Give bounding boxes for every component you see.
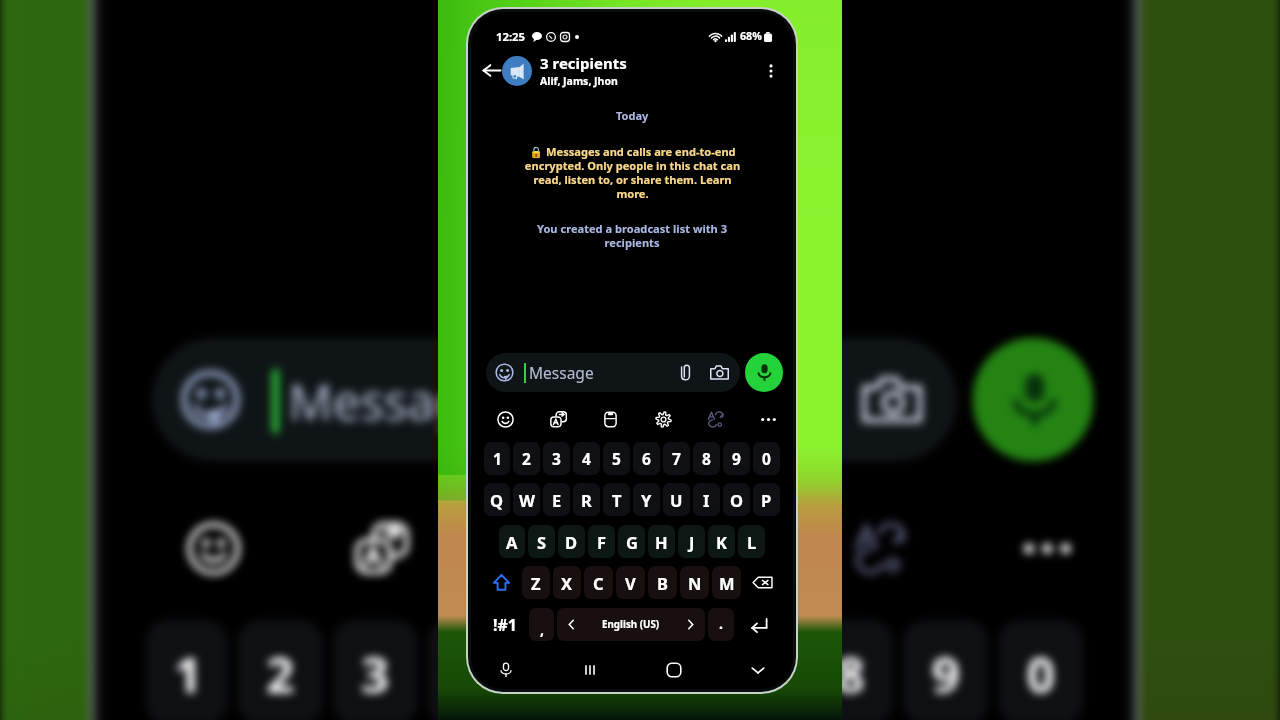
button[interactable]: Voice input xyxy=(491,655,521,685)
staticText: 7 xyxy=(741,639,770,706)
button[interactable]: Recent apps xyxy=(575,655,605,685)
button[interactable]: G xyxy=(618,525,645,558)
button[interactable]: Attach xyxy=(757,373,811,427)
button[interactable]: 9 xyxy=(723,442,750,475)
button[interactable]: Voice message xyxy=(745,353,783,392)
button[interactable]: S xyxy=(528,525,555,558)
button[interactable]: Back xyxy=(477,56,506,85)
button[interactable]: !#1 xyxy=(484,608,526,641)
staticText: 8 xyxy=(702,448,711,469)
button[interactable]: 0 xyxy=(753,442,780,475)
button[interactable]: More xyxy=(753,404,783,434)
staticText: P xyxy=(761,489,772,511)
button[interactable]: R xyxy=(573,483,600,516)
button[interactable]: Previous language xyxy=(557,608,705,641)
button[interactable]: Shift xyxy=(484,566,519,599)
button[interactable]: 3 xyxy=(332,620,418,720)
staticText: Z xyxy=(531,572,541,594)
staticText: B xyxy=(657,572,668,594)
button[interactable]: Y xyxy=(633,483,660,516)
button[interactable]: K xyxy=(708,525,735,558)
button[interactable]: Camera xyxy=(710,363,729,382)
button[interactable]: D xyxy=(558,525,585,558)
staticText: 1 xyxy=(174,639,202,706)
staticText: . xyxy=(719,614,723,633)
button[interactable]: Translate xyxy=(543,404,573,434)
staticText: 1 xyxy=(493,448,502,469)
button[interactable]: I xyxy=(693,483,720,516)
button[interactable]: More xyxy=(998,499,1093,595)
button[interactable]: 0 xyxy=(998,620,1084,720)
button[interactable]: 8 xyxy=(693,442,720,475)
staticText: Q xyxy=(490,489,504,511)
button[interactable]: Emoji and stickers xyxy=(486,353,740,392)
button[interactable]: More options xyxy=(758,58,784,84)
staticText: 4 xyxy=(456,639,485,706)
button[interactable]: 4 xyxy=(573,442,600,475)
button[interactable]: B xyxy=(648,566,677,599)
button[interactable]: X xyxy=(553,566,581,599)
button[interactable]: Z xyxy=(522,566,550,599)
button[interactable]: Backspace xyxy=(744,566,780,599)
button[interactable]: Q xyxy=(484,483,510,516)
button[interactable]: Camera xyxy=(862,369,922,430)
button[interactable]: , xyxy=(529,608,554,641)
button[interactable]: Attach xyxy=(677,364,694,381)
button[interactable]: Handwriting xyxy=(830,499,925,595)
button[interactable]: Emoji xyxy=(164,499,260,595)
button[interactable]: 9 xyxy=(903,620,989,720)
staticText: F xyxy=(597,531,607,553)
button[interactable]: E xyxy=(543,483,570,516)
button[interactable]: Hide keyboard xyxy=(743,655,773,685)
button[interactable]: 5 xyxy=(603,442,630,475)
button[interactable]: 6 xyxy=(633,442,660,475)
staticText: O xyxy=(730,489,744,511)
button[interactable]: 5 xyxy=(523,620,608,720)
button[interactable]: 6 xyxy=(618,620,703,720)
button[interactable]: 4 xyxy=(428,620,513,720)
button[interactable]: Keyboard settings xyxy=(648,404,678,434)
staticText: Message xyxy=(529,362,594,383)
button[interactable]: L xyxy=(738,525,765,558)
button[interactable]: 3 recipients xyxy=(540,53,758,88)
button[interactable]: 7 xyxy=(663,442,690,475)
button[interactable]: N xyxy=(680,566,709,599)
button[interactable]: W xyxy=(513,483,540,516)
button[interactable]: 1 xyxy=(145,620,228,720)
staticText: G xyxy=(626,531,638,553)
button[interactable]: T xyxy=(603,483,630,516)
button[interactable]: Translate xyxy=(332,499,428,595)
button[interactable]: Voice message xyxy=(973,338,1093,461)
button[interactable]: M xyxy=(712,566,741,599)
staticText: L xyxy=(747,531,757,553)
button[interactable]: 1 xyxy=(484,442,510,475)
staticText: 4 xyxy=(582,448,591,469)
button[interactable]: Keyboard settings xyxy=(665,499,760,595)
button[interactable]: 3 xyxy=(543,442,570,475)
button[interactable]: J xyxy=(678,525,705,558)
button[interactable]: P xyxy=(753,483,780,516)
button[interactable]: Broadcast list xyxy=(502,56,532,86)
button[interactable]: Handwriting xyxy=(700,404,730,434)
button[interactable]: Home xyxy=(659,655,689,685)
button[interactable]: . xyxy=(708,608,734,641)
button[interactable]: Emoji and stickers xyxy=(152,338,957,461)
button[interactable]: 7 xyxy=(713,620,798,720)
staticText: T xyxy=(612,489,622,511)
staticText: A xyxy=(506,531,518,553)
button[interactable]: 2 xyxy=(237,620,323,720)
button[interactable]: A xyxy=(499,525,525,558)
button[interactable]: H xyxy=(648,525,675,558)
button[interactable]: Emoji xyxy=(490,404,520,434)
button[interactable]: U xyxy=(663,483,690,516)
button[interactable]: C xyxy=(584,566,613,599)
button[interactable]: Enter xyxy=(737,608,780,641)
button[interactable]: Clipboard xyxy=(595,404,625,434)
button[interactable]: 2 xyxy=(513,442,540,475)
button[interactable]: Clipboard xyxy=(497,499,592,595)
button[interactable]: 8 xyxy=(808,620,894,720)
button[interactable]: V xyxy=(616,566,645,599)
button[interactable]: O xyxy=(723,483,750,516)
button[interactable]: F xyxy=(588,525,615,558)
staticText: 8 xyxy=(836,639,865,706)
